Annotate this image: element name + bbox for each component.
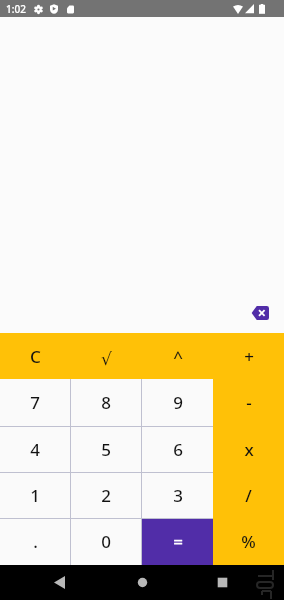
staticText: 0	[101, 530, 111, 553]
staticText: /	[245, 484, 252, 507]
staticText: x	[244, 438, 254, 461]
button[interactable]: 6	[142, 426, 213, 472]
button[interactable]: √	[71, 333, 142, 379]
button[interactable]: 9	[142, 379, 213, 426]
staticText: 6	[173, 438, 183, 461]
button[interactable]: Back	[46, 569, 73, 596]
staticText: -	[246, 391, 252, 414]
staticText: 8	[101, 391, 111, 414]
staticText: %	[241, 530, 256, 553]
staticText: 9	[173, 391, 183, 414]
button[interactable]: C	[0, 333, 71, 379]
staticText: =	[173, 530, 183, 553]
button[interactable]: %	[213, 518, 284, 565]
staticText: 4	[30, 438, 40, 461]
staticText: 1:02	[6, 2, 26, 16]
staticText: √	[101, 349, 112, 369]
staticText: ^	[173, 345, 183, 368]
button[interactable]: Backspace	[251, 306, 269, 320]
button[interactable]: 8	[71, 379, 141, 426]
staticText: 7	[30, 391, 40, 414]
button[interactable]: 5	[71, 426, 141, 472]
staticText: 1	[30, 484, 40, 507]
button[interactable]: .	[0, 518, 70, 565]
button[interactable]: Recent apps	[209, 569, 236, 596]
button[interactable]: ^	[142, 333, 213, 379]
button[interactable]: 3	[142, 472, 213, 518]
button[interactable]: -	[213, 379, 284, 426]
button[interactable]: 1	[0, 472, 70, 518]
staticText: 2	[101, 484, 111, 507]
staticText: 3	[173, 484, 183, 507]
staticText: C	[30, 345, 41, 368]
staticText: +	[244, 345, 254, 368]
button[interactable]: 2	[71, 472, 141, 518]
button[interactable]: +	[213, 333, 284, 379]
button[interactable]: /	[213, 472, 284, 518]
button[interactable]: Home	[129, 569, 156, 596]
staticText: .	[33, 530, 38, 553]
button[interactable]: 7	[0, 379, 70, 426]
button[interactable]: 0	[71, 518, 141, 565]
button[interactable]: 4	[0, 426, 70, 472]
button[interactable]: =	[142, 518, 213, 565]
staticText: 5	[101, 438, 111, 461]
button[interactable]: x	[213, 426, 284, 472]
